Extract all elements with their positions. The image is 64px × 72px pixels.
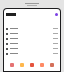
button[interactable] xyxy=(6,26,58,31)
button[interactable] xyxy=(10,63,14,67)
button[interactable] xyxy=(6,31,58,36)
button[interactable] xyxy=(40,63,44,67)
button[interactable] xyxy=(6,41,58,46)
button[interactable] xyxy=(6,51,58,56)
button[interactable] xyxy=(30,63,34,67)
button[interactable] xyxy=(50,63,54,67)
button[interactable] xyxy=(6,46,58,51)
button[interactable] xyxy=(6,36,58,41)
button[interactable] xyxy=(20,63,24,67)
